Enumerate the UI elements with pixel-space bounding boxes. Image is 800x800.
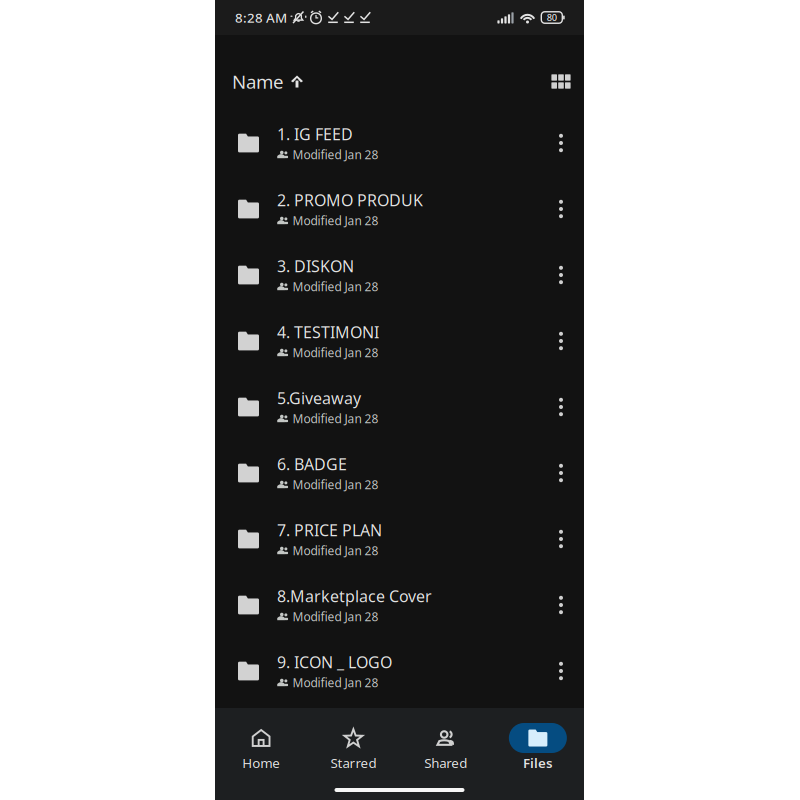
staticText: Home [242, 754, 280, 772]
button[interactable]: 3. DISKON [215, 242, 584, 308]
staticText: 1. IG FEED [277, 123, 353, 145]
button[interactable]: Files [492, 723, 584, 781]
button[interactable]: Starred [307, 723, 399, 781]
staticText: Modified Jan 28 [292, 279, 378, 295]
button[interactable]: 9. ICON _ LOGO [215, 638, 584, 704]
staticText: 4. TESTIMONI [277, 321, 379, 343]
button[interactable]: Home [215, 723, 307, 781]
staticText: Shared [424, 754, 467, 772]
button[interactable]: 4. TESTIMONI [215, 308, 584, 374]
button[interactable]: 5.Giveaway [215, 374, 584, 440]
button[interactable]: 7. PRICE PLAN [215, 506, 584, 572]
staticText: 7. PRICE PLAN [277, 519, 382, 541]
staticText: 5.Giveaway [277, 387, 361, 409]
staticText: Modified Jan 28 [292, 411, 378, 427]
staticText: Modified Jan 28 [292, 147, 378, 163]
button[interactable]: 8.Marketplace Cover [215, 572, 584, 638]
staticText: 8:28 AM [235, 9, 287, 26]
staticText: 9. ICON _ LOGO [277, 651, 392, 673]
staticText: Files [523, 754, 553, 772]
button[interactable]: Shared [399, 723, 492, 781]
staticText: Modified Jan 28 [292, 213, 378, 229]
staticText: 2. PROMO PRODUK [277, 189, 423, 211]
staticText: Modified Jan 28 [292, 345, 378, 361]
staticText: Modified Jan 28 [292, 609, 378, 625]
staticText: Modified Jan 28 [292, 543, 378, 559]
staticText: Name [232, 69, 284, 94]
button[interactable]: Name [232, 61, 303, 101]
button[interactable]: 1. IG FEED [215, 110, 584, 176]
staticText: Modified Jan 28 [292, 477, 378, 493]
staticText: Starred [330, 754, 376, 772]
button[interactable]: 6. BADGE [215, 440, 584, 506]
staticText: 6. BADGE [277, 453, 347, 475]
staticText: Modified Jan 28 [292, 675, 378, 691]
staticText: 3. DISKON [277, 255, 354, 277]
staticText: 80 [547, 11, 557, 24]
staticText: 8.Marketplace Cover [277, 585, 432, 607]
button[interactable]: 2. PROMO PRODUK [215, 176, 584, 242]
button[interactable]: Grid view [549, 69, 573, 93]
